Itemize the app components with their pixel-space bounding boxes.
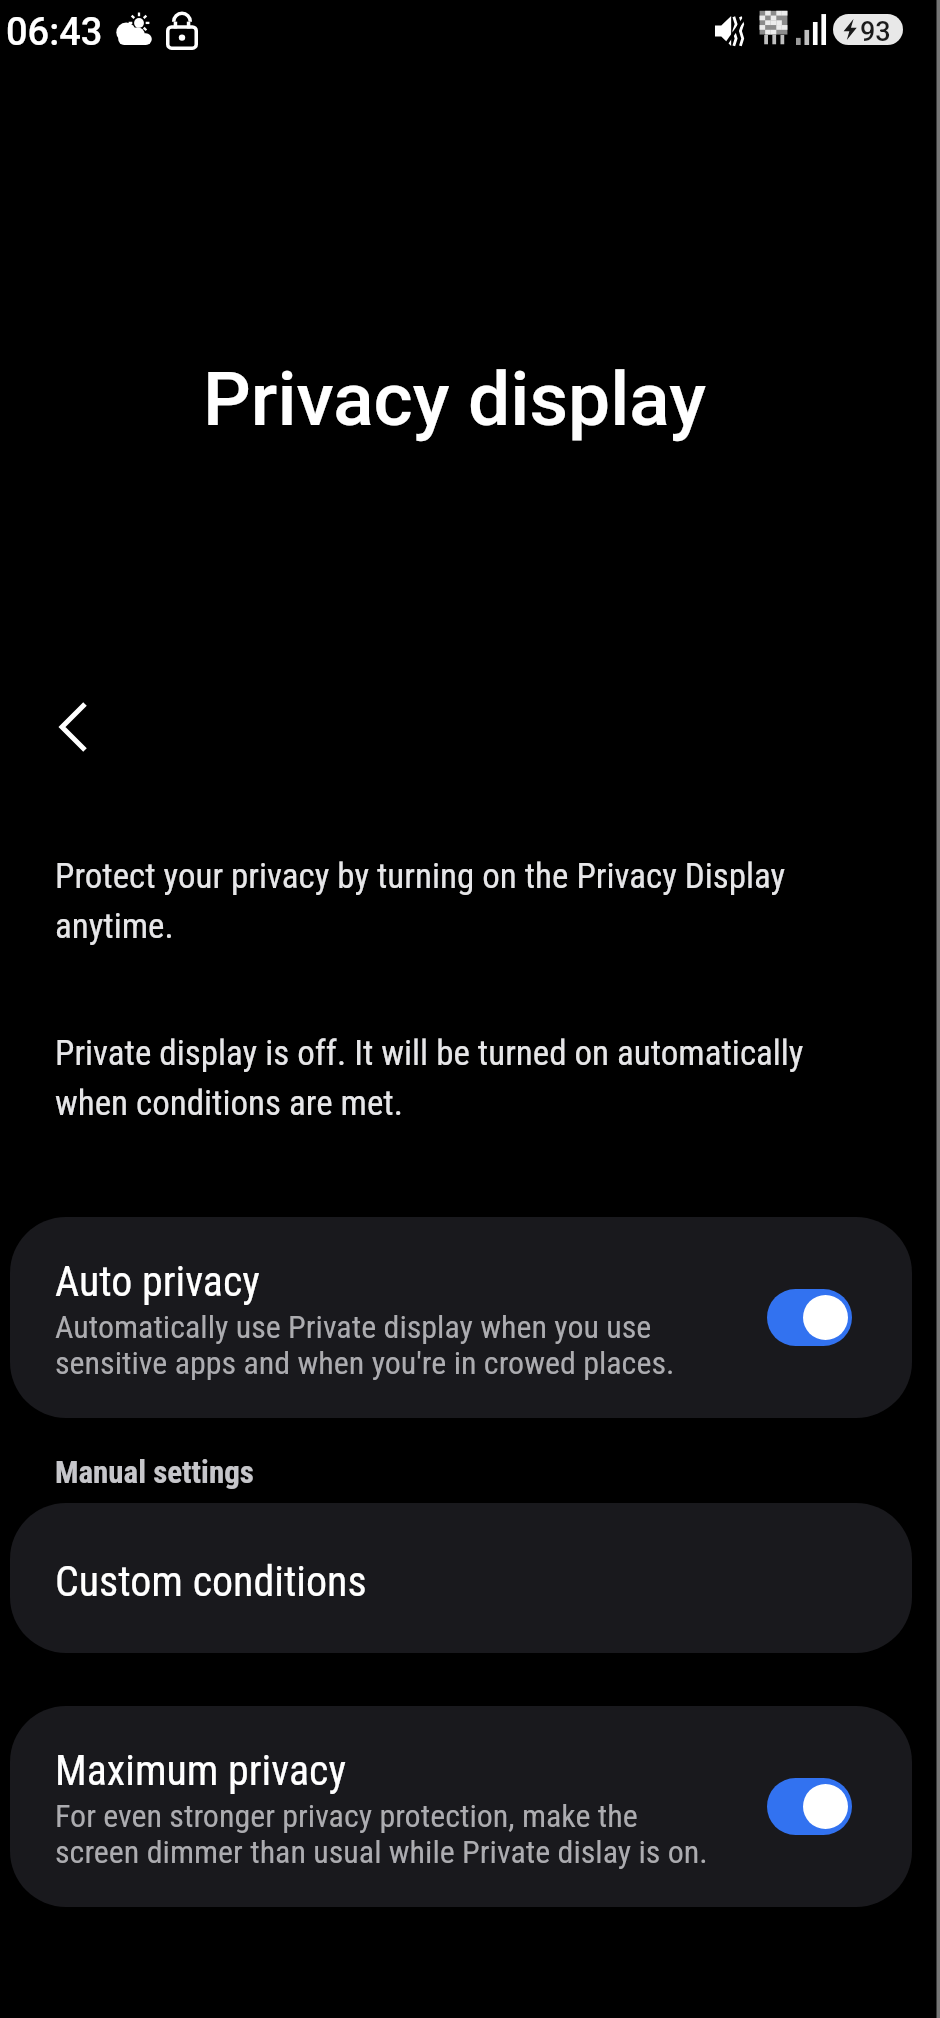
button[interactable]: Maximum privacy — [10, 1706, 912, 1907]
staticText: Maximum privacy — [55, 1746, 346, 1795]
staticText: Privacy display — [203, 355, 706, 443]
staticText: Private display is off. It will be turne… — [55, 1033, 804, 1074]
staticText: anytime. — [55, 906, 174, 947]
staticText: when conditions are met. — [55, 1083, 403, 1124]
button[interactable]: Back — [12, 677, 108, 773]
staticText: Protect your privacy by turning on the P… — [55, 856, 786, 897]
staticText: Manual settings — [55, 1454, 254, 1490]
button[interactable]: Toggle Maximum privacy — [767, 1778, 852, 1835]
staticText: sensitive apps and when you're in crowed… — [55, 1344, 675, 1382]
staticText: For even stronger privacy protection, ma… — [55, 1797, 638, 1835]
staticText: Custom conditions — [55, 1557, 367, 1606]
staticText: screen dimmer than usual while Private d… — [55, 1833, 708, 1871]
button[interactable]: Toggle Auto privacy — [767, 1289, 852, 1346]
staticText: 93 — [860, 16, 891, 45]
button[interactable]: Custom conditions — [10, 1503, 912, 1653]
staticText: Auto privacy — [55, 1257, 260, 1306]
staticText: Automatically use Private display when y… — [55, 1308, 652, 1346]
staticText: 06:43 — [6, 10, 103, 55]
button[interactable]: Auto privacy — [10, 1217, 912, 1418]
